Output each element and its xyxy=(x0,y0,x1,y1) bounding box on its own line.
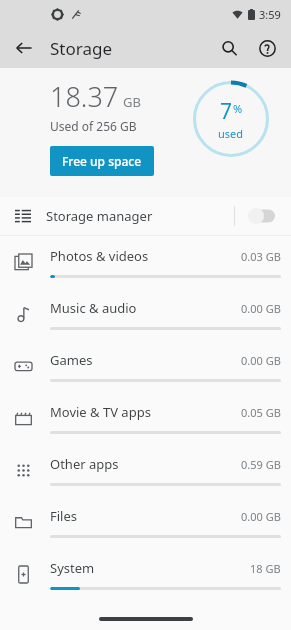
staticText: used xyxy=(218,126,244,141)
staticText: Movie & TV apps xyxy=(50,403,241,421)
staticText: 18 GB xyxy=(250,561,281,576)
staticText: Games xyxy=(50,351,241,369)
staticText: 0.00 GB xyxy=(241,353,281,368)
staticText: System xyxy=(50,559,250,577)
staticText: 0.00 GB xyxy=(241,509,281,524)
staticText: Files xyxy=(50,507,241,525)
button[interactable]: Files xyxy=(0,496,291,548)
staticText: 3:59 xyxy=(259,7,281,22)
staticText: GB xyxy=(123,93,141,111)
button[interactable]: Free up space xyxy=(50,146,154,176)
staticText: 0.00 GB xyxy=(241,301,281,316)
staticText: 0.59 GB xyxy=(241,457,281,472)
button[interactable]: Search xyxy=(213,32,245,64)
button[interactable]: Storage manager toggle xyxy=(247,207,279,225)
staticText: 7 xyxy=(220,97,233,126)
staticText: Storage xyxy=(50,37,113,60)
staticText: Music & audio xyxy=(50,299,241,317)
button[interactable]: Movie & TV apps xyxy=(0,392,291,444)
button[interactable]: Back xyxy=(8,32,40,64)
button[interactable]: Help xyxy=(251,32,283,64)
button[interactable]: Other apps xyxy=(0,444,291,496)
button[interactable]: Photos & videos xyxy=(0,236,291,288)
button[interactable]: Music & audio xyxy=(0,288,291,340)
staticText: Photos & videos xyxy=(50,247,241,265)
button[interactable]: Games xyxy=(0,340,291,392)
button[interactable]: Storage manager xyxy=(0,197,291,235)
staticText: 0.03 GB xyxy=(241,249,281,264)
staticText: Other apps xyxy=(50,455,241,473)
staticText: Used of 256 GB xyxy=(50,118,137,134)
button[interactable]: System xyxy=(0,548,291,600)
staticText: 0.05 GB xyxy=(241,405,281,420)
staticText: Free up space xyxy=(62,153,142,169)
staticText: % xyxy=(233,101,243,116)
staticText: Storage manager xyxy=(46,207,234,225)
staticText: 18.37 xyxy=(50,78,119,115)
